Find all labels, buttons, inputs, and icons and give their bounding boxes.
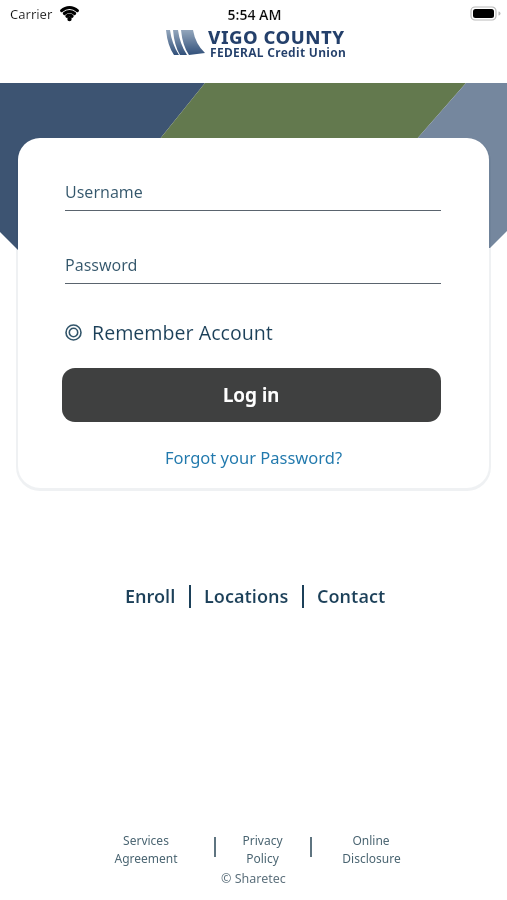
button[interactable]: Services (96, 832, 196, 866)
button[interactable]: Forgot your Password? (165, 446, 343, 468)
button[interactable]: Log in (62, 368, 441, 422)
staticText: Contact (317, 584, 386, 609)
staticText: Online (352, 832, 390, 848)
staticText: Log in (223, 382, 280, 408)
staticText: Remember Account (92, 319, 273, 346)
button[interactable]: Privacy (212, 832, 312, 866)
staticText: Privacy (242, 832, 283, 848)
button[interactable]: Locations (204, 584, 289, 609)
staticText: FEDERAL Credit Union (210, 44, 347, 60)
staticText: Carrier (10, 5, 53, 23)
staticText: Disclosure (342, 850, 401, 866)
button[interactable]: Password (65, 254, 441, 284)
staticText: Username (65, 181, 143, 203)
button[interactable]: Remember Account (65, 319, 273, 346)
button[interactable]: Username (65, 181, 441, 211)
staticText: Services (123, 832, 169, 848)
staticText: VIGO COUNTY (208, 24, 345, 49)
staticText: 5:54 AM (1, 5, 507, 24)
staticText: Locations (204, 584, 289, 609)
button[interactable]: Contact (317, 584, 386, 609)
staticText: Forgot your Password? (165, 446, 343, 468)
staticText: Agreement (114, 850, 178, 866)
button[interactable]: Online (321, 832, 421, 866)
staticText: Enroll (125, 584, 176, 609)
staticText: Policy (246, 850, 279, 866)
staticText: © Sharetec (221, 870, 286, 887)
staticText: Password (65, 254, 138, 276)
button[interactable]: Enroll (125, 584, 176, 609)
